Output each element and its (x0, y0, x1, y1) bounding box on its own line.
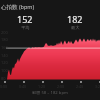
staticText: 180 (1, 37, 8, 42)
staticText: 100 (1, 68, 8, 73)
staticText: 範囲 58 – 182 bpm (32, 90, 68, 96)
staticText: 152 (17, 13, 33, 25)
staticText: 心拍数 (bpm) (1, 3, 35, 11)
staticText: 80 (1, 76, 6, 81)
staticText: 182 (67, 13, 83, 25)
button[interactable]: 152 (0, 13, 50, 30)
staticText: 3:20 (95, 84, 100, 89)
staticText: 2:00 (57, 84, 65, 89)
button[interactable]: 182 (50, 13, 100, 30)
button[interactable]: 心拍数 (bpm) (1, 3, 35, 11)
staticText: 200 (1, 30, 8, 35)
staticText: 0:40 (19, 84, 27, 89)
staticText: 160 (1, 45, 8, 50)
staticText: 140 (1, 53, 8, 58)
staticText: 2:40 (76, 84, 84, 89)
staticText: 最大 (71, 25, 80, 30)
staticText: 120 (1, 60, 8, 65)
staticText: 1:20 (38, 84, 46, 89)
staticText: 0:00 (0, 84, 8, 89)
staticText: 平均 (21, 25, 30, 30)
